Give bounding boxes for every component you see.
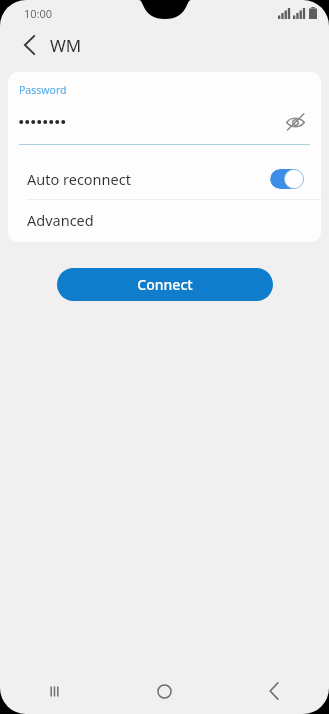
button[interactable]: Show password — [280, 107, 310, 137]
staticText: Connect — [137, 275, 193, 294]
button[interactable]: Auto reconnect — [8, 159, 321, 199]
button[interactable]: Home — [109, 668, 219, 714]
staticText: WM — [50, 34, 82, 57]
button[interactable]: Advanced — [8, 200, 321, 240]
button[interactable]: Connect — [57, 268, 273, 301]
button[interactable]: Password — [8, 72, 321, 145]
staticText: Password — [19, 83, 67, 97]
staticText: Auto reconnect — [27, 169, 270, 189]
staticText: Advanced — [27, 210, 94, 230]
button[interactable]: Back — [14, 30, 44, 60]
staticText: 10:00 — [24, 6, 53, 21]
button[interactable]: Auto reconnect toggle — [270, 169, 304, 189]
button[interactable]: Back — [219, 668, 329, 714]
button[interactable]: Recent apps — [0, 668, 109, 714]
